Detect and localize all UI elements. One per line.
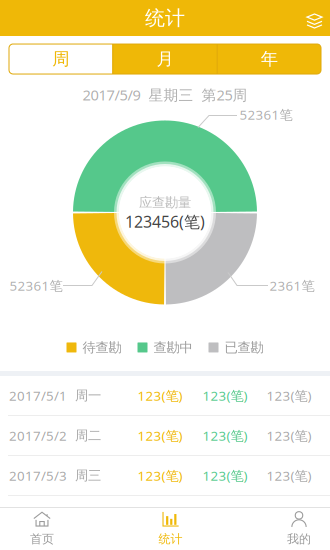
staticText: 123(笔) — [137, 467, 182, 484]
staticText: 周三 — [75, 467, 101, 484]
staticText: 待查勘 — [82, 339, 121, 356]
staticText: 123456(笔) — [125, 211, 205, 232]
button[interactable]: 周 — [9, 44, 112, 74]
button[interactable]: 2017/5/2 — [0, 416, 330, 456]
staticText: 123(笔) — [202, 467, 247, 484]
staticText: 123(笔) — [266, 427, 311, 444]
staticText: 123(笔) — [137, 427, 182, 444]
staticText: 123(笔) — [266, 387, 311, 404]
button[interactable]: 年 — [218, 44, 321, 74]
staticText: 2017/5/9 星期三 第25周 — [82, 85, 247, 104]
staticText: 我的 — [287, 532, 311, 546]
staticText: 2017/5/3 — [9, 467, 67, 484]
button[interactable]: Layers — [290, 0, 330, 36]
staticText: 123(笔) — [202, 387, 247, 404]
staticText: 首页 — [30, 532, 54, 546]
staticText: 123(笔) — [202, 427, 247, 444]
staticText: 应查勘量 — [139, 194, 191, 211]
staticText: 52361笔 — [239, 106, 292, 123]
staticText: 周一 — [75, 387, 101, 404]
staticText: 统计 — [145, 6, 185, 30]
staticText: 统计 — [158, 532, 182, 546]
staticText: 123(笔) — [266, 467, 311, 484]
staticText: 2017/5/1 — [9, 387, 67, 404]
button[interactable]: 2017/5/3 — [0, 456, 330, 496]
staticText: 周二 — [75, 427, 101, 444]
staticText: 2017/5/2 — [9, 427, 67, 444]
staticText: 周 — [52, 48, 69, 70]
button[interactable]: 2017/5/1 — [0, 376, 330, 416]
button[interactable]: 统计 — [139, 508, 201, 550]
button[interactable]: 我的 — [268, 508, 330, 550]
button[interactable]: 首页 — [11, 508, 73, 550]
staticText: 已查勘 — [224, 339, 263, 356]
button[interactable]: 月 — [113, 44, 217, 74]
staticText: 年 — [261, 48, 278, 70]
staticText: 123(笔) — [137, 387, 182, 404]
staticText: 月 — [156, 48, 173, 70]
staticText: 2361笔 — [269, 277, 314, 294]
staticText: 查勘中 — [153, 339, 192, 356]
staticText: 52361笔 — [9, 277, 62, 294]
